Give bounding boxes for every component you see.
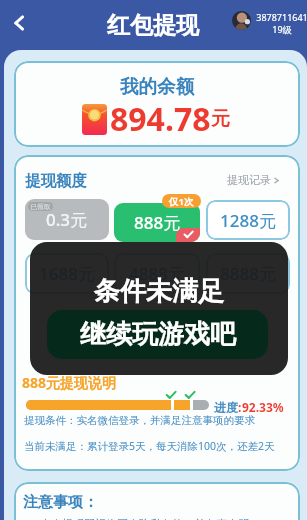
staticText: 894.78 <box>110 97 211 141</box>
staticText: 888元提现说明 <box>22 373 117 392</box>
staticText: 已领取 <box>30 202 51 211</box>
staticText: 4888元 <box>129 262 185 285</box>
staticText: 0.3元 <box>46 208 88 231</box>
staticText: 1688元 <box>39 262 95 285</box>
staticText: 提现记录 <box>227 173 271 187</box>
staticText: 92.33% <box>242 399 284 415</box>
button[interactable]: 0.3元 <box>25 199 109 240</box>
staticText: 提现额度 <box>25 171 87 191</box>
staticText: 注意事项： <box>23 493 98 512</box>
staticText: : <box>238 399 242 415</box>
staticText: 888元 <box>134 211 181 234</box>
staticText: 条件未满足 <box>94 275 224 308</box>
staticText: 元 <box>211 107 230 131</box>
button[interactable]: 4888元 <box>114 253 200 294</box>
button[interactable]: Back <box>3 7 35 39</box>
staticText: 当前未满足：累计登录5天，每天消除100次，还差2天 <box>24 439 275 453</box>
staticText: 红包提现 <box>107 11 199 40</box>
staticText: 进度 <box>214 400 238 415</box>
button[interactable]: 8888元 <box>206 253 290 294</box>
button[interactable]: 1688元 <box>25 253 109 294</box>
staticText: 继续玩游戏吧 <box>80 318 236 351</box>
staticText: 提现条件：实名微信登录，并满足注意事项的要求 <box>24 414 255 427</box>
button[interactable]: 继续玩游戏吧 <box>47 310 268 359</box>
staticText: 仅1次 <box>169 195 194 208</box>
staticText: 19级 <box>256 23 307 35</box>
staticText: 3878711641 <box>256 11 307 23</box>
button[interactable]: 1288元 <box>206 200 290 240</box>
staticText: 8888元 <box>220 262 276 285</box>
button[interactable]: 提现记录 <box>227 173 281 187</box>
button[interactable]: 888元 <box>114 203 200 242</box>
staticText: 我的余额 <box>120 75 194 98</box>
staticText: 1288元 <box>220 209 276 232</box>
staticText: 1、点击提现即视为同意隐私条款，并免责声明； <box>23 516 261 520</box>
